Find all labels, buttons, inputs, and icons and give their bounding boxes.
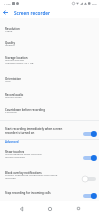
staticText: Internal audio xyxy=(5,95,22,98)
staticText: during recording xyxy=(5,155,25,158)
staticText: Stop recording for incoming calls xyxy=(5,191,51,195)
staticText: Auto xyxy=(5,79,11,82)
button[interactable]: Orientation xyxy=(0,75,99,87)
staticText: Medium xyxy=(5,43,15,46)
staticText: 11:30 xyxy=(4,2,11,5)
staticText: Block overlay notifications xyxy=(5,171,42,175)
button[interactable]: Recent apps xyxy=(71,201,86,216)
staticText: 1080p xyxy=(5,29,13,32)
staticText: Record audio xyxy=(5,93,24,97)
staticText: Quality xyxy=(5,41,16,45)
button[interactable]: Quality xyxy=(0,39,99,51)
button[interactable]: Countdown before recording xyxy=(0,106,99,118)
staticText: Screen recorder xyxy=(14,10,51,16)
staticText: Visual feedback when touching xyxy=(5,152,42,155)
button[interactable]: Start recording immediately when screen xyxy=(0,125,99,139)
button[interactable]: Show touches xyxy=(0,148,99,163)
staticText: recorded xyxy=(5,176,16,179)
staticText: recorder is turned on xyxy=(5,131,35,135)
button[interactable]: Back xyxy=(0,7,11,18)
staticText: Resolution xyxy=(5,27,20,31)
button[interactable]: Storage location xyxy=(0,54,99,69)
staticText: Storage location xyxy=(5,56,28,60)
staticText: Advanced xyxy=(5,140,19,144)
button[interactable]: Stop recording for incoming calls xyxy=(0,189,99,199)
staticText: Orientation xyxy=(5,77,22,81)
button[interactable]: Record audio xyxy=(0,91,99,103)
button[interactable]: Home xyxy=(42,201,57,216)
button[interactable]: Back xyxy=(14,201,29,216)
staticText: Available space: 32.1 GB xyxy=(5,61,34,64)
staticText: Countdown before recording xyxy=(5,108,45,112)
button[interactable]: Resolution xyxy=(0,25,99,37)
staticText: Start recording immediately when screen xyxy=(5,127,63,131)
staticText: 3 seconds xyxy=(5,110,17,113)
staticText: Internal storage xyxy=(5,58,24,61)
staticText: 93% xyxy=(92,2,97,5)
staticText: Show touches xyxy=(5,150,25,154)
button[interactable]: Block overlay notifications xyxy=(0,169,99,184)
staticText: Prevent unexpected notifications from be… xyxy=(5,173,58,176)
